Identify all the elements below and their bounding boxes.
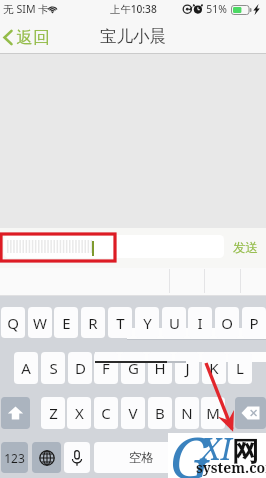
staticText: XI (201, 428, 232, 469)
button[interactable]: Q (1, 307, 25, 338)
button[interactable]: Dictation (64, 442, 90, 473)
button[interactable]: Z (41, 397, 65, 429)
button[interactable]: H (148, 352, 172, 384)
staticText: D (75, 358, 86, 378)
staticText: 换行 (216, 450, 241, 466)
staticText: V (128, 403, 138, 423)
button[interactable]: V (121, 397, 145, 429)
staticText: P (249, 313, 259, 333)
button[interactable]: 123 (1, 442, 28, 473)
staticText: Z (49, 403, 58, 423)
button[interactable]: R (81, 307, 105, 338)
button[interactable]: N (175, 397, 199, 429)
button[interactable]: I (188, 307, 212, 338)
staticText: G (128, 358, 139, 378)
staticText: Y (143, 313, 152, 333)
button[interactable]: C (94, 397, 118, 429)
staticText: 网 (232, 435, 259, 469)
button[interactable]: Shift (1, 397, 30, 429)
button[interactable]: T (108, 307, 132, 338)
staticText: S (49, 358, 58, 378)
staticText: R (88, 313, 98, 333)
button[interactable]: Delete (235, 397, 266, 429)
button[interactable]: J (175, 352, 199, 384)
staticText: 空格 (129, 450, 154, 466)
staticText: N (181, 403, 193, 423)
staticText: K (209, 358, 219, 378)
staticText: system.com (196, 458, 266, 477)
button[interactable]: X (67, 397, 91, 429)
staticText: I (197, 313, 203, 333)
staticText: A (21, 358, 31, 378)
staticText: M (206, 403, 220, 423)
button[interactable]: 发送 (233, 240, 258, 256)
staticText: J (185, 358, 190, 378)
staticText: F (102, 358, 110, 378)
staticText: O (221, 313, 233, 333)
staticText: H (154, 358, 166, 378)
staticText: L (236, 358, 244, 378)
button[interactable]: 换行 (191, 442, 265, 473)
staticText: T (116, 313, 125, 333)
button[interactable]: 空格 (94, 442, 188, 473)
button[interactable]: S (41, 352, 65, 384)
button[interactable]: Y (135, 307, 159, 338)
staticText: 无 SIM 卡 (3, 2, 49, 16)
button[interactable]: O (215, 307, 239, 338)
staticText: W (33, 313, 47, 333)
button[interactable]: 返回 (0, 27, 56, 48)
button[interactable]: K (202, 352, 226, 384)
staticText: X (75, 403, 84, 423)
staticText: 返回 (16, 27, 50, 48)
button[interactable]: G (121, 352, 145, 384)
button[interactable]: Change keyboard (32, 442, 61, 473)
staticText: E (62, 313, 71, 333)
button[interactable]: W (28, 307, 52, 338)
button[interactable]: P (242, 307, 266, 338)
staticText: G (170, 418, 211, 478)
button[interactable]: L (228, 352, 252, 384)
button[interactable]: A (14, 352, 38, 384)
staticText: C (101, 403, 111, 423)
button[interactable]: E (54, 307, 78, 338)
staticText: Q (7, 313, 19, 333)
button[interactable]: M (201, 397, 225, 429)
staticText: 上午10:38 (110, 2, 157, 16)
button[interactable]: U (162, 307, 186, 338)
button[interactable]: D (68, 352, 92, 384)
staticText: 123 (4, 450, 25, 466)
button[interactable]: B (148, 397, 172, 429)
staticText: 51% (206, 2, 227, 16)
staticText: B (155, 403, 165, 423)
staticText: U (169, 313, 180, 333)
button[interactable]: F (94, 352, 118, 384)
staticText: 宝儿小晨 (100, 26, 166, 47)
button[interactable] (4, 235, 224, 258)
